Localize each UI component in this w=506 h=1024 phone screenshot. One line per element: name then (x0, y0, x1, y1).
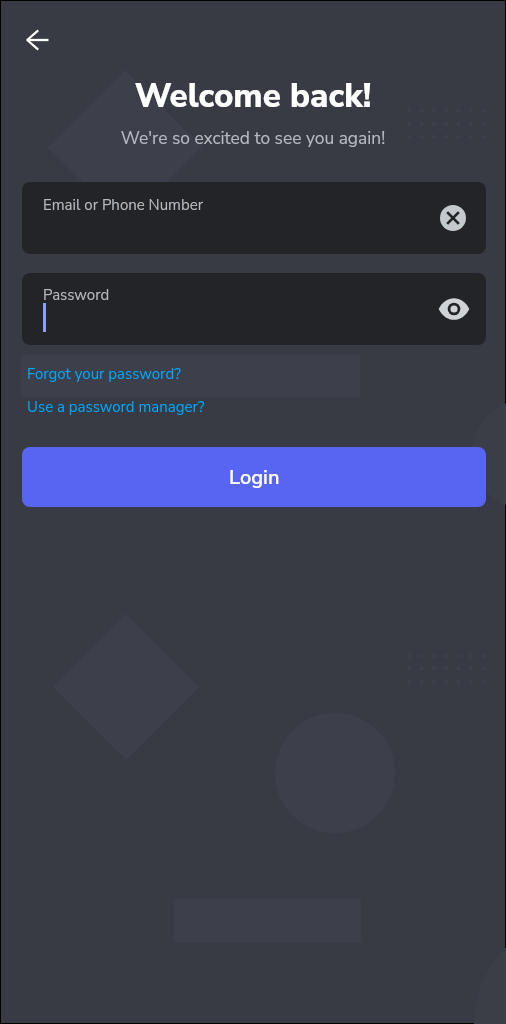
staticText: Welcome back! (1, 74, 505, 119)
button[interactable]: Clear text (435, 200, 471, 236)
staticText: We're so excited to see you again! (1, 126, 505, 150)
staticText: Forgot your password? (27, 364, 181, 384)
button[interactable]: Forgot your password? (20, 361, 188, 387)
button[interactable]: Show password (436, 291, 472, 327)
staticText: Email or Phone Number (43, 195, 204, 215)
button[interactable]: Email or Phone Number (22, 182, 486, 254)
button[interactable]: Login (22, 447, 486, 507)
button[interactable]: Back (16, 18, 60, 62)
button[interactable]: Use a password manager? (20, 394, 212, 420)
staticText: Login (229, 464, 280, 491)
staticText: Use a password manager? (27, 397, 205, 417)
staticText: Password (43, 285, 110, 305)
button[interactable]: Password (22, 273, 486, 345)
